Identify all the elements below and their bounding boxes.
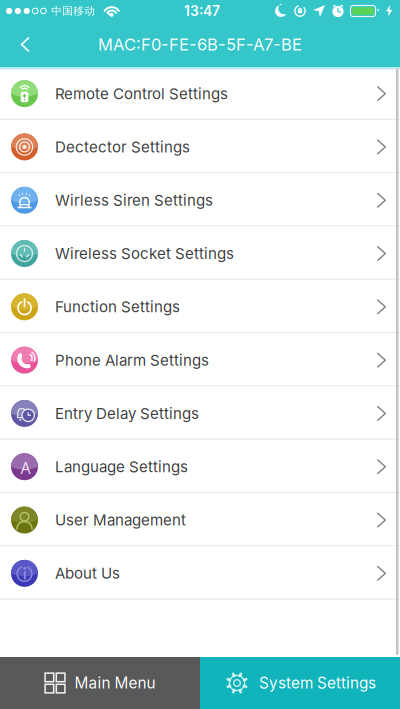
staticText: About Us	[55, 564, 120, 582]
staticText: User Management	[55, 511, 186, 529]
button[interactable]: Function Settings	[0, 280, 400, 333]
staticText: 13:47	[184, 3, 220, 19]
staticText: A	[20, 457, 30, 478]
staticText: Remote Control Settings	[55, 84, 228, 103]
button[interactable]: Entry Delay Settings	[0, 387, 400, 440]
button[interactable]: Wireless Socket Settings	[0, 227, 400, 280]
staticText: Language Settings	[55, 458, 188, 476]
button[interactable]: System Settings	[200, 657, 400, 709]
staticText: Wireless Socket Settings	[55, 244, 234, 263]
staticText: Entry Delay Settings	[55, 404, 199, 422]
button[interactable]: About Us	[0, 547, 400, 600]
staticText: Dectector Settings	[55, 138, 190, 156]
button[interactable]: A	[0, 440, 400, 493]
staticText: 中国移动	[51, 4, 95, 17]
button[interactable]: Wirless Siren Settings	[0, 174, 400, 227]
button[interactable]: Main Menu	[0, 657, 200, 709]
button[interactable]: User Management	[0, 493, 400, 547]
staticText: System Settings	[259, 674, 376, 692]
staticText: Main Menu	[74, 674, 155, 692]
staticText: MAC:F0-FE-6B-5F-A7-BE	[98, 34, 302, 54]
button[interactable]: Back	[0, 26, 31, 62]
staticText: Wirless Siren Settings	[55, 191, 213, 209]
staticText: Function Settings	[55, 298, 180, 316]
button[interactable]: Dectector Settings	[0, 120, 400, 174]
button[interactable]: Remote Control Settings	[0, 67, 400, 120]
button[interactable]: Phone Alarm Settings	[0, 333, 400, 387]
staticText: Phone Alarm Settings	[55, 351, 209, 369]
